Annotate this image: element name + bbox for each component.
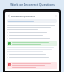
other: Incorrect answer (8, 63, 11, 66)
button[interactable] (7, 37, 57, 40)
button[interactable]: Incorrect answer (7, 62, 57, 69)
button[interactable]: Back (7, 14, 10, 17)
staticText: Reviewing Questions (11, 14, 35, 17)
button[interactable]: Back (7, 13, 57, 17)
button[interactable] (7, 53, 57, 56)
button[interactable]: Correct answer (7, 41, 57, 46)
button[interactable] (7, 31, 57, 34)
button[interactable] (7, 34, 57, 37)
other: Correct answer (8, 42, 11, 45)
button[interactable] (7, 19, 57, 23)
button[interactable]: More options (54, 14, 57, 17)
button[interactable] (7, 56, 57, 59)
staticText: Work on Incorrect Questions (10, 3, 55, 7)
